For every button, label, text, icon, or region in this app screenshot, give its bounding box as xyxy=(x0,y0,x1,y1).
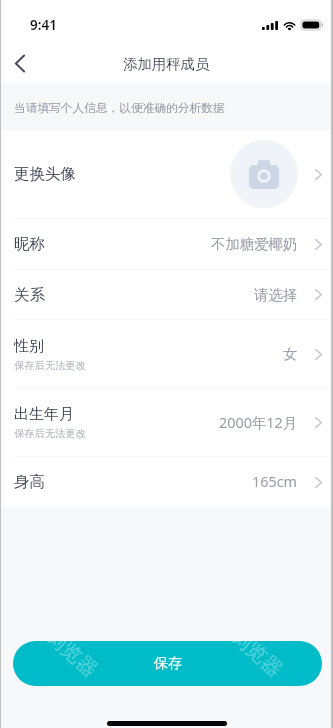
button[interactable]: Back xyxy=(0,42,40,83)
button[interactable]: 出生年月 xyxy=(0,389,333,456)
staticText: 不加糖爱椰奶 xyxy=(211,235,298,253)
staticText: 芒果浏览器 xyxy=(196,641,287,682)
button[interactable]: 关系 xyxy=(0,270,333,319)
staticText: 保存后无法更改 xyxy=(14,427,87,440)
button[interactable]: 昵称 xyxy=(0,219,333,269)
staticText: 身高 xyxy=(14,472,45,492)
staticText: 165cm xyxy=(252,472,298,492)
staticText: 关系 xyxy=(14,285,45,305)
button[interactable]: 更换头像 xyxy=(0,130,333,218)
staticText: 请选择 xyxy=(254,286,298,304)
staticText: 女 xyxy=(283,345,298,363)
staticText: 当请填写个人信息，以便准确的分析数据 xyxy=(14,101,225,116)
button[interactable]: 性别 xyxy=(0,320,333,388)
staticText: 昵称 xyxy=(14,234,45,254)
staticText: 保存后无法更改 xyxy=(14,359,87,372)
staticText: 2000年12月 xyxy=(219,413,298,433)
staticText: 性别 xyxy=(14,337,44,356)
staticText: 9:41 xyxy=(30,16,57,34)
staticText: 出生年月 xyxy=(14,405,74,424)
staticText: 芒果浏览器 xyxy=(13,641,102,682)
staticText: 保存 xyxy=(154,655,182,673)
staticText: 更换头像 xyxy=(14,164,76,184)
staticText: 添加用秤成员 xyxy=(123,55,210,73)
button[interactable]: 芒果浏览器 xyxy=(13,641,322,686)
button[interactable]: 身高 xyxy=(0,457,333,507)
